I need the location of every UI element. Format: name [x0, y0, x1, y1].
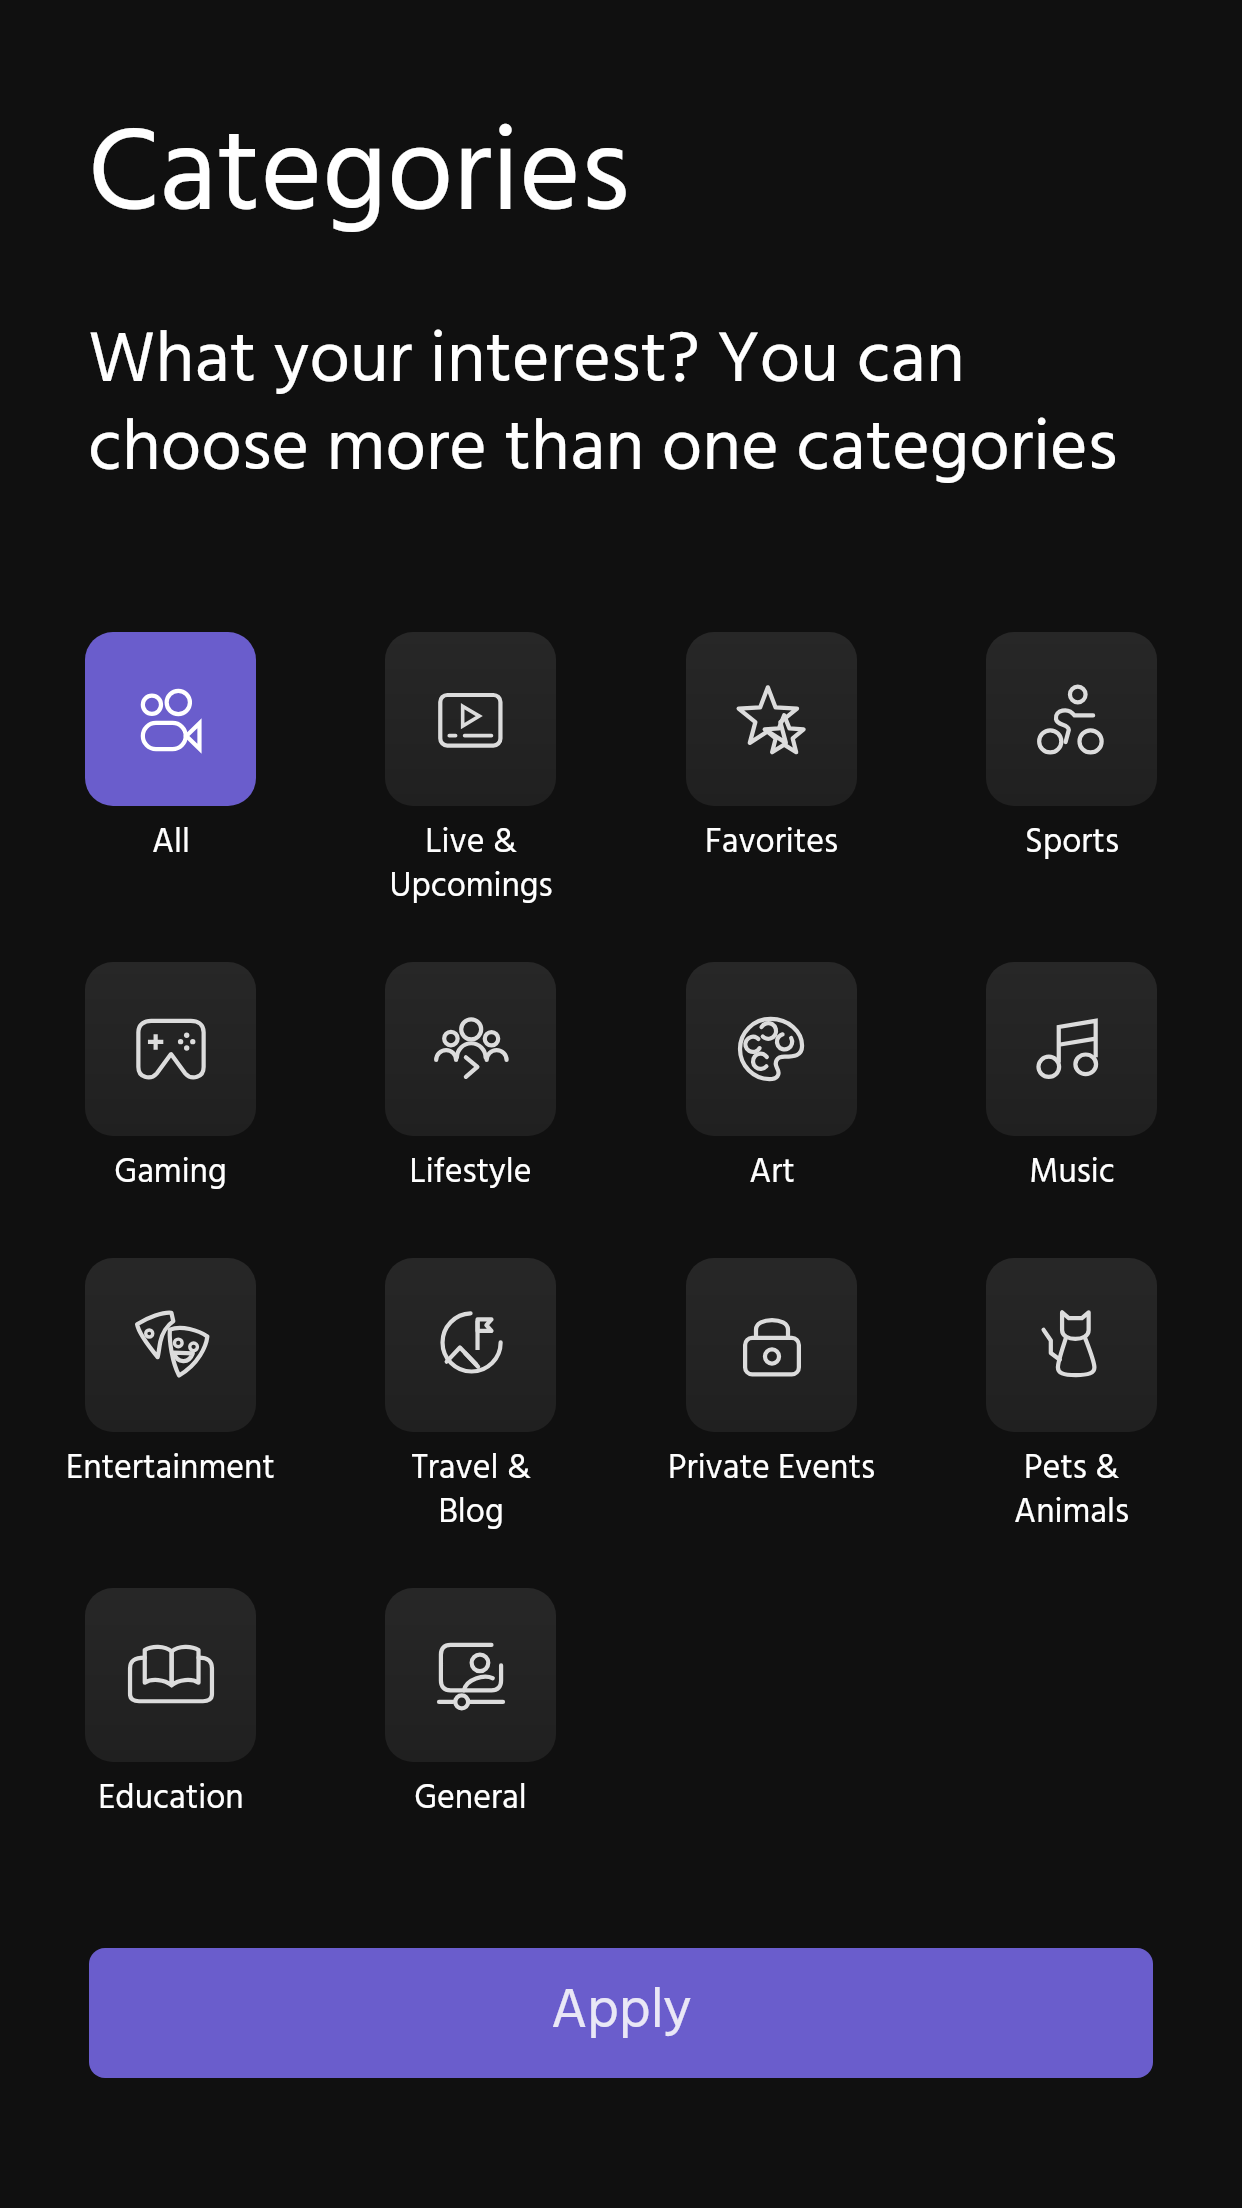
- staticText: Music: [1029, 1146, 1115, 1200]
- staticText: General: [414, 1772, 527, 1826]
- staticText: Categories: [88, 85, 630, 274]
- staticText: Travel & Blog: [411, 1442, 531, 1541]
- button[interactable]: Private Events: [686, 1258, 857, 1432]
- button[interactable]: Art: [686, 962, 857, 1136]
- staticText: Gaming: [114, 1146, 227, 1200]
- button[interactable]: Music: [986, 962, 1157, 1136]
- staticText: Private Events: [668, 1442, 875, 1496]
- button[interactable]: Lifestyle: [385, 962, 556, 1136]
- button[interactable]: Travel & Blog: [385, 1258, 556, 1432]
- button[interactable]: Gaming: [85, 962, 256, 1136]
- button[interactable]: General: [385, 1588, 556, 1762]
- staticText: Lifestyle: [409, 1146, 532, 1200]
- button[interactable]: Apply: [89, 1948, 1153, 2078]
- button[interactable]: All: [85, 632, 256, 806]
- button[interactable]: Pets & Animals: [986, 1258, 1157, 1432]
- staticText: All: [152, 816, 190, 870]
- staticText: Education: [98, 1772, 244, 1826]
- staticText: Art: [749, 1146, 795, 1200]
- staticText: Sports: [1025, 816, 1119, 870]
- button[interactable]: Favorites: [686, 632, 857, 806]
- button[interactable]: Entertainment: [85, 1258, 256, 1432]
- button[interactable]: Live & Upcomings: [385, 632, 556, 806]
- staticText: Entertainment: [66, 1442, 275, 1496]
- button[interactable]: Education: [85, 1588, 256, 1762]
- staticText: Apply: [551, 1968, 692, 2058]
- staticText: Pets & Animals: [1014, 1442, 1129, 1541]
- button[interactable]: Sports: [986, 632, 1157, 806]
- staticText: Live & Upcomings: [389, 816, 553, 915]
- staticText: What your interest? You can choose more …: [88, 305, 1118, 508]
- staticText: Favorites: [705, 816, 838, 870]
